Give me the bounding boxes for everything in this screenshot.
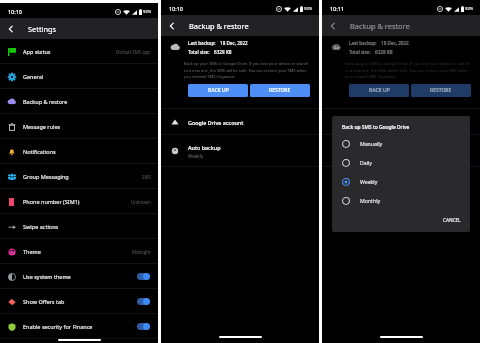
button[interactable]: Monthly (342, 191, 462, 210)
staticText: 10:10 (169, 5, 183, 12)
staticText: Notifications (23, 148, 56, 155)
button[interactable]: Message rules (0, 114, 158, 139)
button[interactable]: Backup & restore (0, 89, 158, 114)
button[interactable]: Enable security for Finance (0, 314, 158, 339)
staticText: Backup & restore (350, 21, 410, 31)
staticText: BACK UP (369, 87, 390, 94)
staticText: 92% (465, 6, 474, 12)
button[interactable]: Group Messaging (0, 164, 158, 189)
button[interactable]: RESTORE (250, 84, 310, 97)
button[interactable]: Google Drive account (322, 109, 480, 135)
staticText: 6328 KB (375, 49, 393, 55)
button[interactable]: BACK UP (349, 84, 409, 97)
staticText: Back up SMS to Google Drive (342, 124, 410, 131)
staticText: 18 Dec, 2022 (381, 40, 409, 46)
staticText: Group Messaging (23, 173, 69, 180)
staticText: Backup & restore (189, 21, 249, 31)
staticText: Phone number (SIM1) (23, 198, 80, 205)
staticText: Last backup: (188, 40, 216, 46)
staticText: Theme (23, 248, 41, 255)
staticText: General (23, 73, 44, 80)
staticText: Enable security for Finance (23, 323, 93, 330)
staticText: Weekly (360, 178, 378, 185)
staticText: Auto backup (349, 144, 382, 151)
staticText: 92% (304, 6, 313, 12)
staticText: 10:11 (330, 5, 344, 12)
staticText: 92% (143, 9, 152, 15)
staticText: 10:10 (8, 8, 22, 15)
button[interactable]: RESTORE (411, 84, 471, 97)
staticText: Backup & restore (23, 98, 68, 105)
button[interactable]: General (0, 64, 158, 89)
button[interactable]: BACK UP (188, 84, 248, 97)
button[interactable]: Theme (0, 239, 158, 264)
staticText: CANCEL (443, 217, 461, 223)
staticText: 18 Dec, 2022 (220, 40, 248, 46)
button[interactable]: Back (0, 18, 21, 39)
staticText: Back up your SMS to Google Drive. If you… (184, 61, 312, 79)
staticText: SMS (142, 174, 151, 180)
staticText: Auto backup (188, 144, 221, 151)
staticText: Swipe actions (23, 223, 59, 230)
staticText: Daily (360, 159, 373, 166)
staticText: Use system theme (23, 273, 71, 280)
staticText: Settings (28, 24, 57, 34)
staticText: Total size: (349, 49, 371, 55)
button[interactable]: Swipe actions (0, 214, 158, 239)
button[interactable]: CANCEL (435, 211, 470, 232)
staticText: Manually (360, 140, 383, 147)
staticText: Message rules (23, 123, 61, 130)
staticText: RESTORE (430, 87, 452, 94)
staticText: Show Offers tab (23, 298, 65, 305)
button[interactable]: Weekly (342, 172, 462, 191)
button[interactable]: Auto backup (161, 135, 319, 167)
staticText: 6328 KB (214, 49, 232, 55)
staticText: Midnight (132, 249, 151, 255)
button[interactable]: Daily (342, 153, 462, 172)
staticText: Unknown (131, 199, 151, 205)
button[interactable]: Google Drive account (161, 109, 319, 135)
button[interactable]: Show Offers tab (0, 289, 158, 314)
staticText: App status (23, 48, 51, 55)
button[interactable]: Auto backup (322, 135, 480, 167)
staticText: BACK UP (208, 87, 229, 94)
button[interactable]: Back (161, 15, 182, 36)
button[interactable]: Notifications (0, 139, 158, 164)
button[interactable]: App status (0, 39, 158, 64)
staticText: Last backup: (349, 40, 377, 46)
button[interactable]: Back (322, 15, 343, 36)
staticText: Weekly (188, 153, 204, 159)
button[interactable]: Manually (342, 134, 462, 153)
staticText: RESTORE (269, 87, 291, 94)
staticText: Google Drive account (188, 119, 244, 126)
staticText: Monthly (360, 197, 381, 204)
staticText: Default SMS app (116, 49, 151, 55)
button[interactable]: Use system theme (0, 264, 158, 289)
staticText: Back up your SMS to Google Drive. If you… (345, 61, 473, 79)
button[interactable]: Phone number (SIM1) (0, 189, 158, 214)
staticText: Total size: (188, 49, 210, 55)
staticText: Google Drive account (349, 119, 405, 126)
